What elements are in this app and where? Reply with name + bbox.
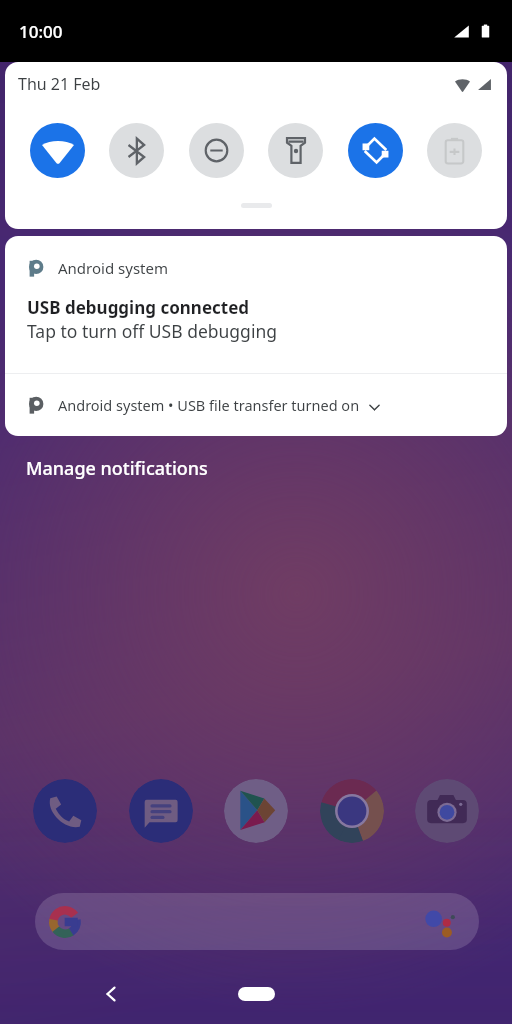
staticText: USB debugging connected: [27, 296, 250, 319]
button[interactable]: Manage notifications: [26, 456, 208, 481]
staticText: 10:00: [19, 20, 63, 43]
button[interactable]: Messages: [129, 779, 193, 843]
button[interactable]: Bluetooth: [109, 123, 164, 178]
staticText: Android system • USB file transfer turne…: [58, 395, 360, 415]
button[interactable]: Flashlight: [268, 123, 323, 178]
button[interactable]: Wi-Fi: [30, 123, 85, 178]
button[interactable]: [35, 893, 479, 950]
button[interactable]: Play Store: [224, 779, 288, 843]
button[interactable]: Android system • USB file transfer turne…: [5, 374, 507, 436]
button[interactable]: Android system: [5, 236, 507, 373]
button[interactable]: Do not disturb: [189, 123, 244, 178]
button[interactable]: Chrome: [320, 779, 384, 843]
staticText: Thu 21 Feb: [18, 73, 101, 95]
button[interactable]: Camera: [415, 779, 479, 843]
staticText: Tap to turn off USB debugging: [27, 319, 277, 343]
button[interactable]: Back: [94, 977, 128, 1011]
staticText: Android system: [58, 258, 168, 278]
button[interactable]: Auto-rotate: [348, 123, 403, 178]
button[interactable]: Home: [238, 987, 275, 1001]
button[interactable]: Phone: [33, 779, 97, 843]
button[interactable]: Battery saver: [427, 123, 482, 178]
